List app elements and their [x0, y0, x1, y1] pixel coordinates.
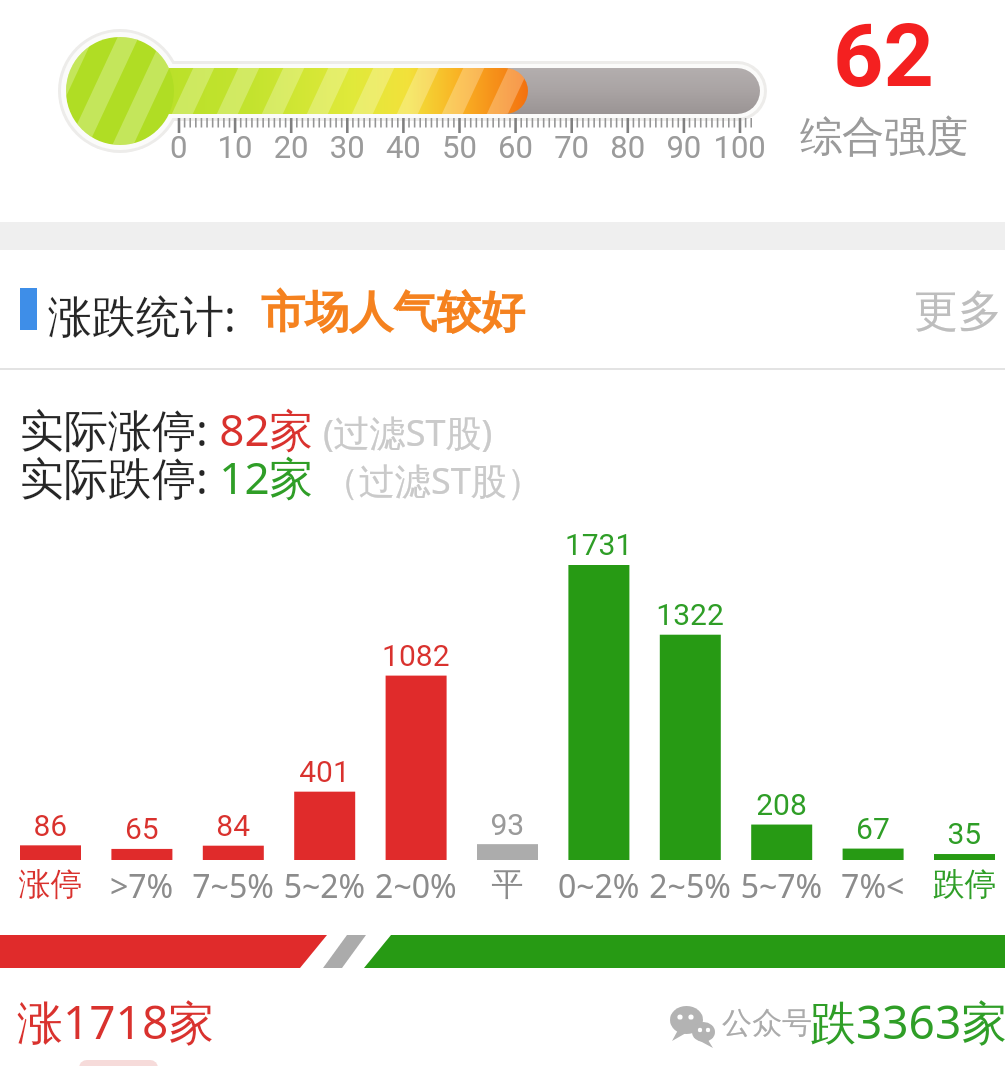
staticText: 涨1718家 — [17, 990, 215, 1053]
staticText: 62 — [833, 4, 934, 107]
staticText: 涨跌统计: — [48, 285, 236, 345]
staticText: 综合强度 — [800, 111, 968, 164]
button[interactable]: 更多 — [914, 284, 1002, 339]
staticText: 公众号 — [722, 1004, 812, 1042]
staticText: 实际跌停: 12家 （过滤ST股） — [20, 447, 543, 507]
staticText: 更多 — [914, 284, 1002, 339]
staticText: 实际涨停: 82家 (过滤ST股) — [20, 399, 493, 459]
staticText: 市场人气较好 — [261, 285, 525, 340]
staticText: 跌3363家 — [810, 990, 1005, 1053]
